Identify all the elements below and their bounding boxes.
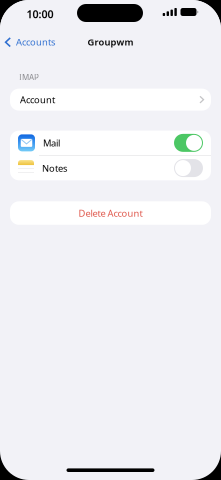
staticText: Account [20,93,55,106]
staticText: 10:00 [26,7,53,21]
staticText: Mail [43,137,60,149]
button[interactable]: Delete Account [10,201,211,225]
button[interactable]: Notes [10,156,211,180]
staticText: IMAP [19,72,39,83]
staticText: Groupwm [87,36,133,48]
button[interactable]: Accounts [0,30,61,54]
button[interactable]: Account [10,89,211,111]
button[interactable]: Mail [10,131,211,155]
staticText: Notes [42,162,67,174]
staticText: Delete Account [78,207,142,219]
staticText: Accounts [16,36,55,48]
